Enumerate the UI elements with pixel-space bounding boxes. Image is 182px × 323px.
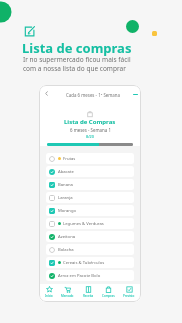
staticText: Ir no supermercado ficou mais fácil com … xyxy=(23,55,131,73)
button[interactable]: Arroz em Pacote Bolo xyxy=(46,270,134,281)
button[interactable]: Frutas xyxy=(46,153,134,164)
staticText: Mercado xyxy=(61,294,74,298)
button[interactable]: Receita xyxy=(81,287,96,299)
staticText: Azeitona xyxy=(58,234,76,240)
staticText: Receita xyxy=(83,294,94,298)
staticText: Bolacha xyxy=(58,247,74,253)
staticText: Frutas xyxy=(63,156,76,162)
staticText: Cada 6 meses - 1ª Semana xyxy=(66,92,121,98)
button[interactable]: Legumes & Verduras xyxy=(46,218,134,229)
staticText: Lista de Compras xyxy=(64,118,116,126)
staticText: Cereais & Tubérculos xyxy=(63,260,105,266)
staticText: Legumes & Verduras xyxy=(63,221,104,227)
staticText: Início xyxy=(45,294,53,298)
button[interactable]: Morango xyxy=(46,205,134,216)
button[interactable]: Cereais & Tubérculos xyxy=(46,257,134,268)
button[interactable]: Bolacha xyxy=(46,244,134,255)
button[interactable]: Back xyxy=(39,85,53,102)
staticText: Laranja xyxy=(58,195,73,201)
staticText: Previsto xyxy=(123,294,135,298)
button[interactable]: Previsto xyxy=(121,287,137,299)
button[interactable]: Compras xyxy=(100,287,117,299)
button[interactable]: Abacate xyxy=(46,166,134,177)
staticText: Arroz em Pacote Bolo xyxy=(58,273,101,279)
staticText: Lista de compras xyxy=(22,39,132,57)
staticText: Abacate xyxy=(58,169,74,175)
staticText: Compras xyxy=(102,294,115,298)
button[interactable]: Mercado xyxy=(59,287,76,299)
staticText: 6 meses - Semana 1 xyxy=(70,127,111,133)
button[interactable]: Início xyxy=(43,287,55,299)
staticText: Banana xyxy=(58,182,73,188)
button[interactable]: Azeitona xyxy=(46,231,134,242)
staticText: 8/20 xyxy=(86,134,94,139)
button[interactable]: Laranja xyxy=(46,192,134,203)
staticText: Morango xyxy=(58,208,77,214)
button[interactable]: Banana xyxy=(46,179,134,190)
